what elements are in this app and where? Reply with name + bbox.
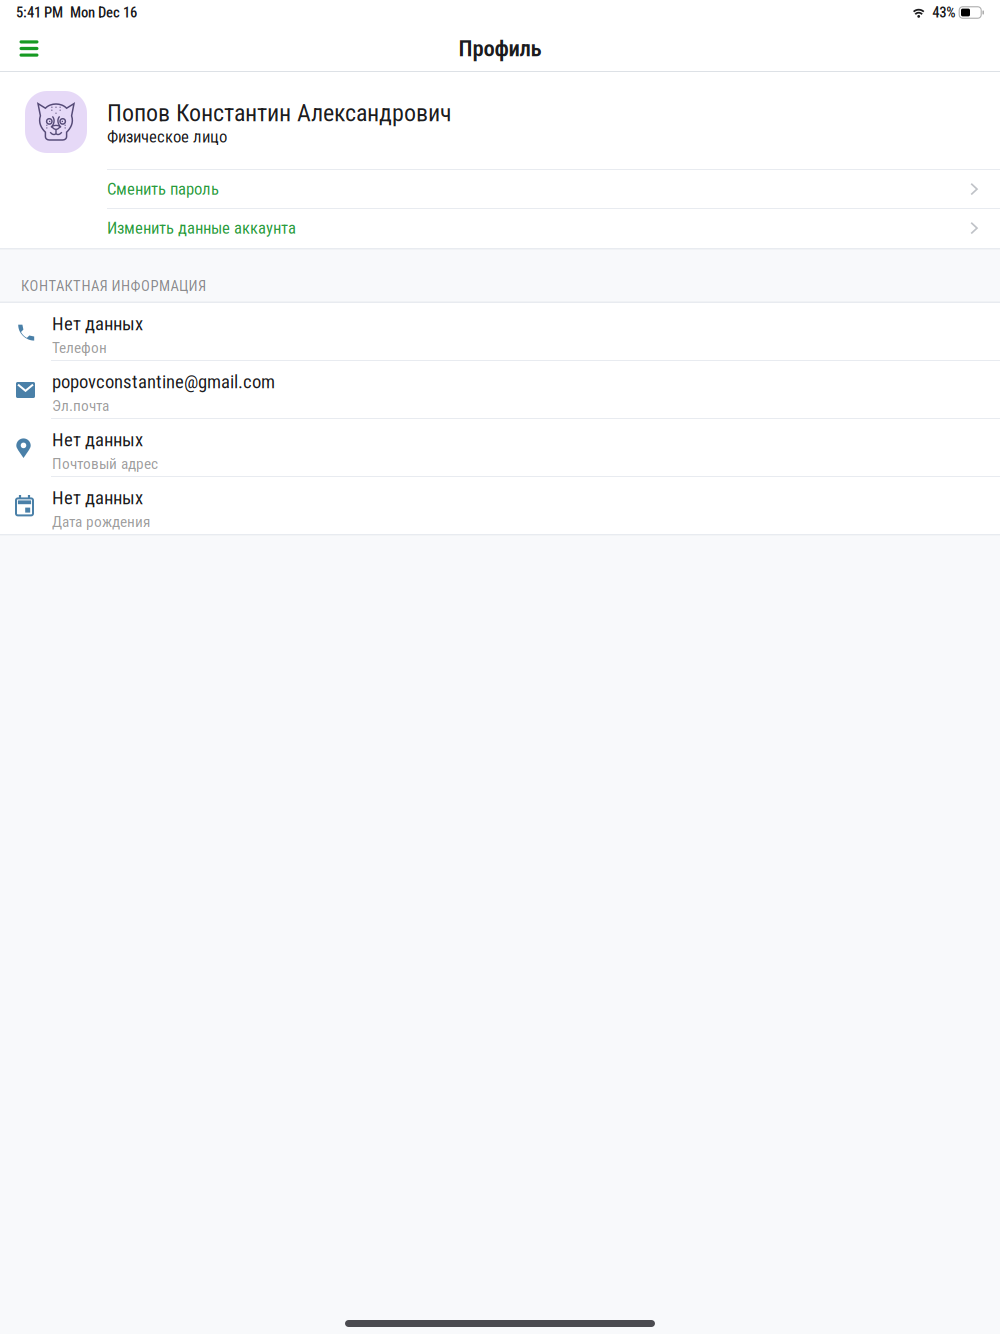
staticText: Нет данных (52, 313, 143, 335)
button[interactable]: Сменить пароль (0, 170, 1000, 208)
staticText: Телефон (52, 339, 107, 357)
button[interactable]: Нет данных (0, 419, 1000, 476)
staticText: Нет данных (52, 487, 143, 509)
staticText: Профиль (458, 35, 541, 62)
staticText: Изменить данные аккаунта (107, 218, 296, 238)
staticText: Попов Константин Александрович (107, 99, 452, 127)
staticText: Дата рождения (52, 513, 150, 531)
staticText: Физическое лицо (107, 127, 227, 147)
staticText: Эл.почта (52, 397, 109, 415)
button[interactable]: popovconstantine@gmail.com (0, 361, 1000, 418)
button[interactable]: Нет данных (0, 477, 1000, 534)
button[interactable]: Нет данных (0, 303, 1000, 360)
staticText: Mon Dec 16 (70, 4, 137, 21)
staticText: popovconstantine@gmail.com (52, 371, 275, 393)
staticText: Нет данных (52, 429, 143, 451)
staticText: 43% (932, 4, 955, 21)
button[interactable]: Menu (7, 26, 51, 70)
staticText: 5:41 PM (16, 4, 63, 21)
staticText: Почтовый адрес (52, 455, 158, 473)
staticText: КОНТАКТНАЯ ИНФОРМАЦИЯ (21, 277, 206, 295)
staticText: Сменить пароль (107, 179, 219, 199)
button[interactable]: Изменить данные аккаунта (0, 209, 1000, 247)
